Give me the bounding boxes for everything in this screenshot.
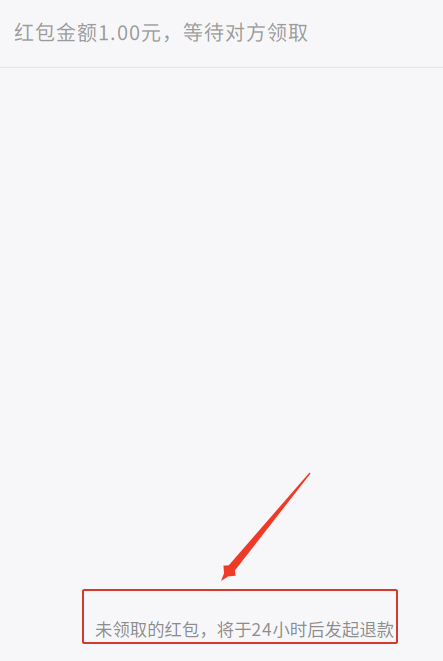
staticText: 未领取的红包，将于24小时后发起退款	[95, 616, 394, 641]
staticText: 红包金额1.00元，等待对方领取	[14, 17, 308, 46]
